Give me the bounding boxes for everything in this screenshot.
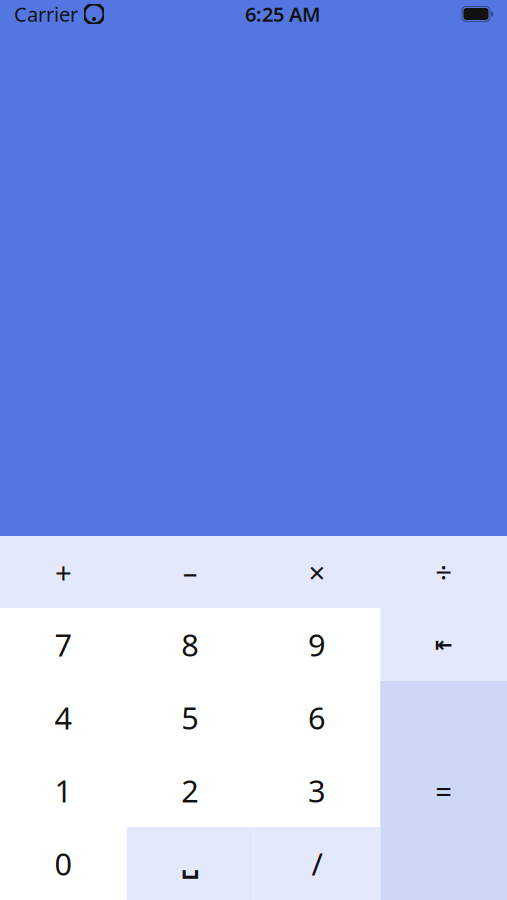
button[interactable]: Space bbox=[127, 827, 254, 900]
staticText: Carrier bbox=[14, 1, 78, 27]
staticText: ␣ bbox=[181, 848, 200, 879]
button[interactable]: 1 bbox=[0, 754, 127, 827]
staticText: ÷ bbox=[435, 552, 452, 591]
button[interactable]: / bbox=[253, 827, 380, 900]
staticText: 9 bbox=[308, 624, 326, 665]
staticText: / bbox=[311, 843, 322, 884]
staticText: 3 bbox=[308, 770, 326, 811]
button[interactable]: 7 bbox=[0, 608, 127, 681]
button[interactable]: 8 bbox=[127, 608, 254, 681]
button[interactable]: ÷ bbox=[380, 536, 507, 608]
staticText: – bbox=[183, 552, 198, 591]
button[interactable]: 3 bbox=[253, 754, 380, 827]
button[interactable]: 4 bbox=[0, 681, 127, 754]
staticText: = bbox=[435, 771, 452, 810]
staticText: 4 bbox=[54, 697, 72, 738]
staticText: 7 bbox=[54, 624, 72, 665]
staticText: × bbox=[308, 552, 325, 591]
staticText: + bbox=[55, 552, 72, 591]
button[interactable]: 9 bbox=[253, 608, 380, 681]
button[interactable]: 6 bbox=[253, 681, 380, 754]
button[interactable]: × bbox=[253, 536, 380, 608]
staticText: 1 bbox=[54, 770, 72, 811]
staticText: 8 bbox=[181, 624, 199, 665]
staticText: 6:25 AM bbox=[245, 1, 321, 27]
button[interactable]: 2 bbox=[127, 754, 254, 827]
button[interactable]: + bbox=[0, 536, 127, 608]
button[interactable]: Backspace bbox=[380, 608, 507, 681]
button[interactable]: – bbox=[127, 536, 254, 608]
staticText: 5 bbox=[181, 697, 199, 738]
staticText: 0 bbox=[54, 843, 72, 884]
staticText: ⇤ bbox=[435, 632, 453, 657]
staticText: 6 bbox=[308, 697, 326, 738]
button[interactable]: 5 bbox=[127, 681, 254, 754]
button[interactable]: 0 bbox=[0, 827, 127, 900]
button[interactable]: = bbox=[380, 681, 507, 900]
staticText: 2 bbox=[181, 770, 199, 811]
